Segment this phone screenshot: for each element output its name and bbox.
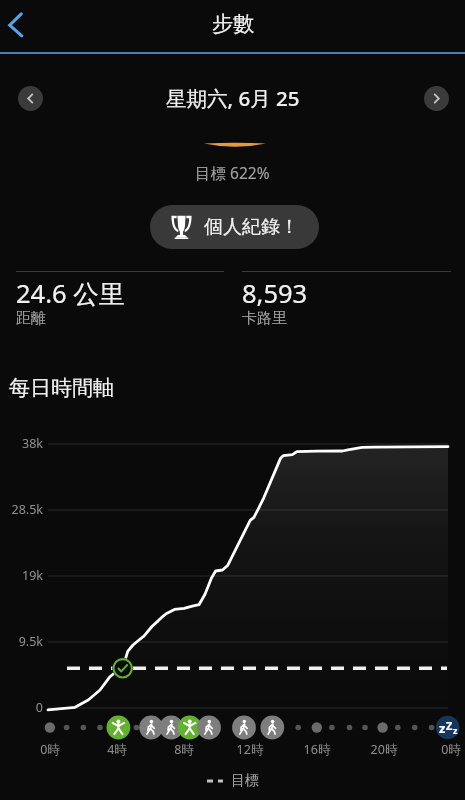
staticText: 19k [0, 567, 43, 584]
staticText: 4時 [87, 741, 147, 758]
staticText: 9.5k [0, 633, 43, 650]
staticText: 目標 622% [195, 162, 270, 183]
staticText: 24.6 公里 [16, 276, 125, 311]
staticText: 個人紀錄！ [204, 215, 299, 239]
staticText: 距離 [16, 309, 46, 328]
staticText: 0 [0, 699, 43, 716]
button[interactable]: Sleep [436, 716, 460, 740]
staticText: 20時 [354, 741, 414, 758]
staticText: 星期六, 6月 25 [166, 84, 300, 112]
staticText: 每日時間軸 [9, 375, 114, 401]
button[interactable]: Previous day [18, 86, 43, 111]
staticText: 卡路里 [242, 309, 287, 328]
staticText: 38k [0, 435, 43, 452]
staticText: 12時 [220, 741, 280, 758]
staticText: z [439, 719, 446, 737]
staticText: 28.5k [0, 501, 43, 518]
staticText: 8時 [154, 741, 214, 758]
staticText: 8,593 [242, 276, 308, 311]
button[interactable]: 個人紀錄！ [150, 205, 319, 249]
staticText: 步數 [212, 11, 254, 37]
button[interactable]: Next day [424, 86, 449, 111]
staticText: 目標 [231, 772, 259, 790]
staticText: 0時 [20, 741, 80, 758]
staticText: z [453, 724, 458, 736]
staticText: 16時 [287, 741, 347, 758]
staticText: 0時 [421, 741, 465, 758]
staticText: Z [446, 718, 453, 733]
button[interactable]: Back [0, 2, 44, 48]
